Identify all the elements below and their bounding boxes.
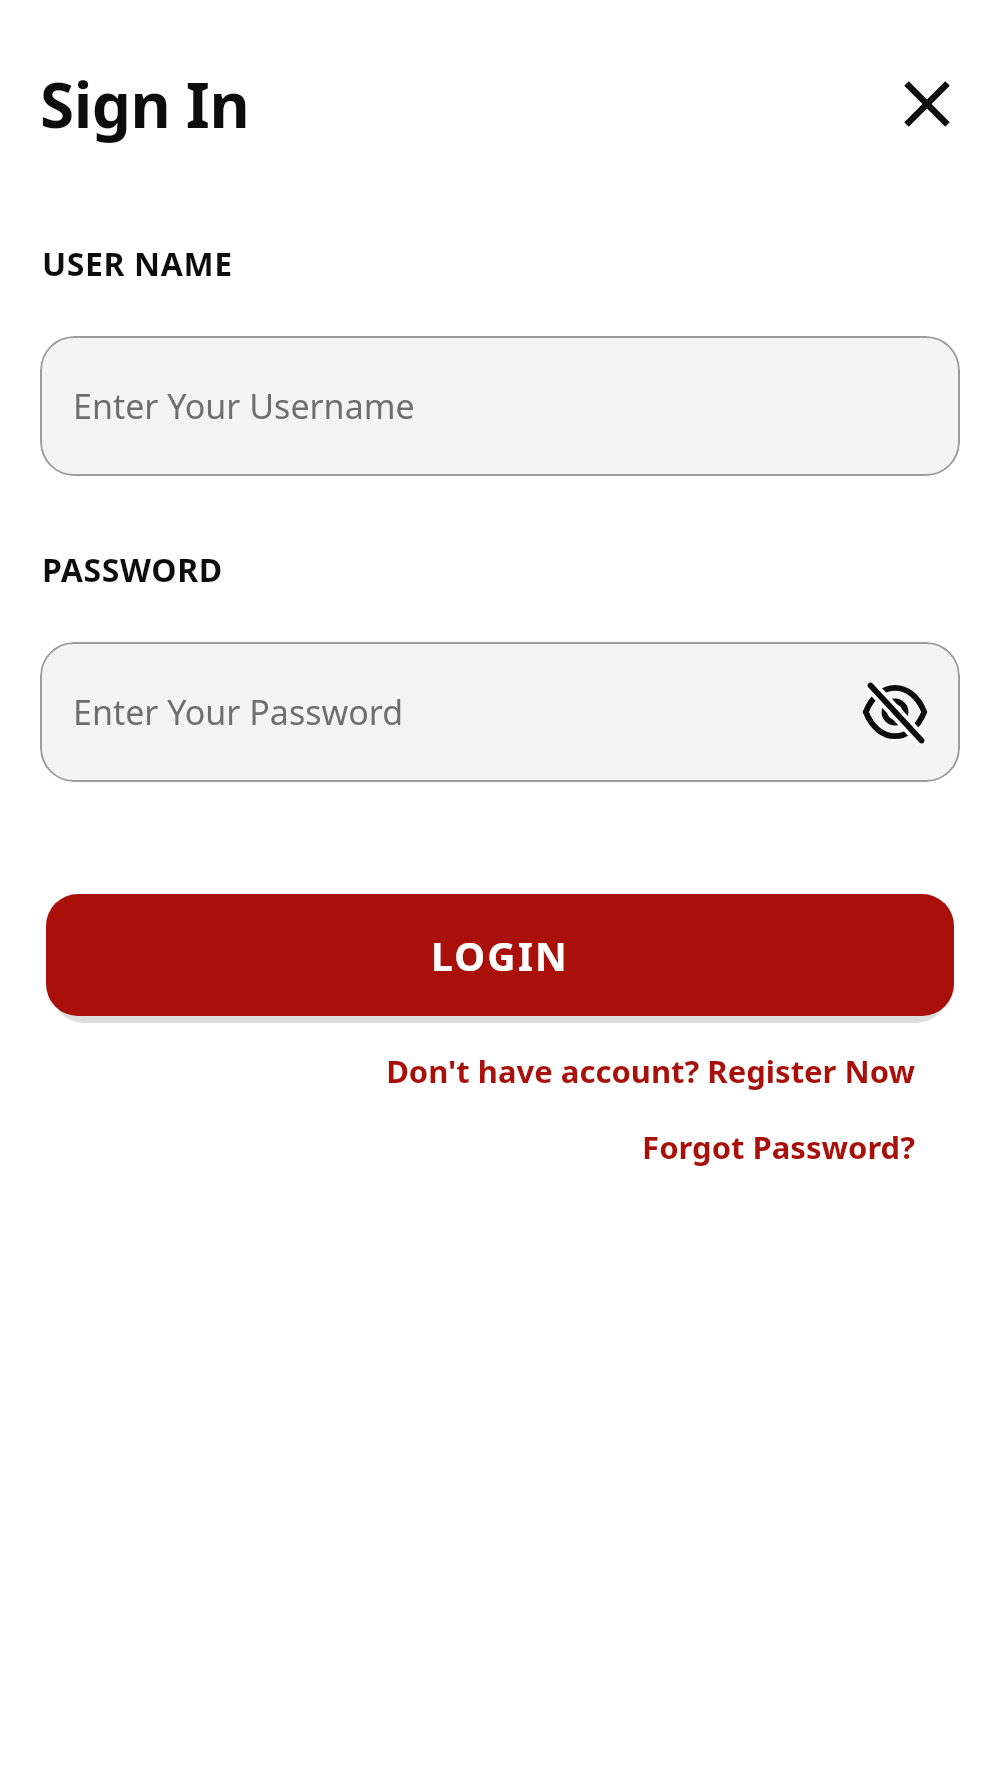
button[interactable]: Enter Your Password [40,642,960,782]
staticText: Don't have account? Register Now [386,1050,915,1092]
staticText: Sign In [40,62,250,146]
staticText: Enter Your Username [73,383,415,429]
button[interactable]: Show password [856,673,934,751]
button[interactable]: Close [896,73,958,135]
button[interactable]: Don't have account? Register Now [386,1044,915,1098]
button[interactable]: LOGIN [46,894,954,1016]
staticText: USER NAME [42,242,233,286]
button[interactable]: Enter Your Username [40,336,960,476]
staticText: LOGIN [431,929,569,982]
staticText: Enter Your Password [73,689,404,735]
staticText: Forgot Password? [642,1126,915,1168]
staticText: PASSWORD [42,548,223,592]
button[interactable]: Forgot Password? [642,1120,915,1174]
